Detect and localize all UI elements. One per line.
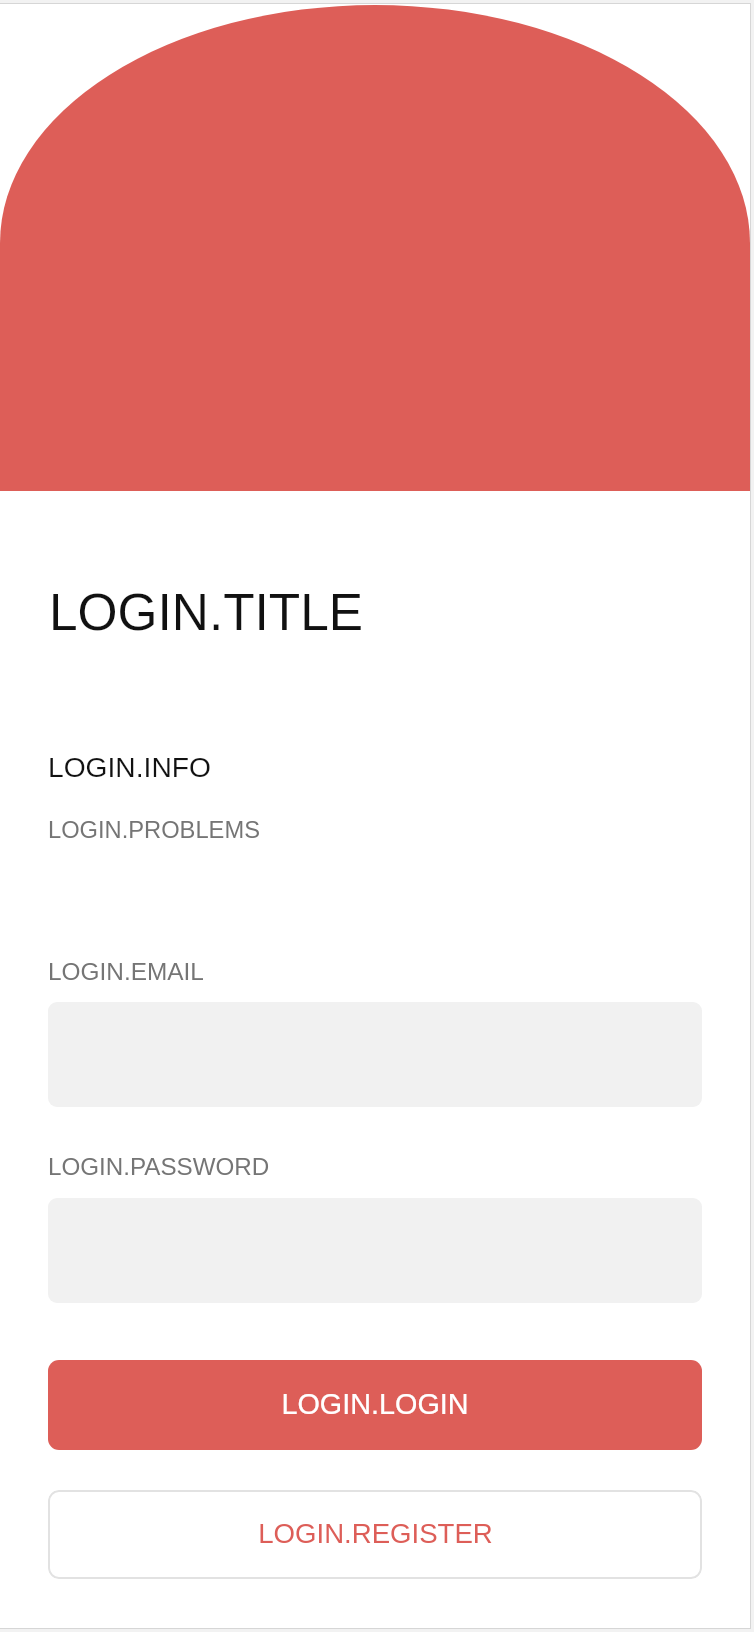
button[interactable]: LOGIN.REGISTER: [48, 1490, 702, 1579]
staticText: LOGIN.LOGIN: [281, 1388, 469, 1420]
staticText: LOGIN.EMAIL: [48, 958, 204, 985]
staticText: LOGIN.INFO: [48, 751, 211, 783]
staticText: LOGIN.PASSWORD: [48, 1153, 270, 1180]
staticText: LOGIN.REGISTER: [258, 1518, 493, 1549]
button[interactable]: LOGIN.PROBLEMS: [48, 817, 260, 843]
button[interactable]: LOGIN.LOGIN: [48, 1360, 702, 1450]
staticText: LOGIN.TITLE: [49, 583, 364, 640]
